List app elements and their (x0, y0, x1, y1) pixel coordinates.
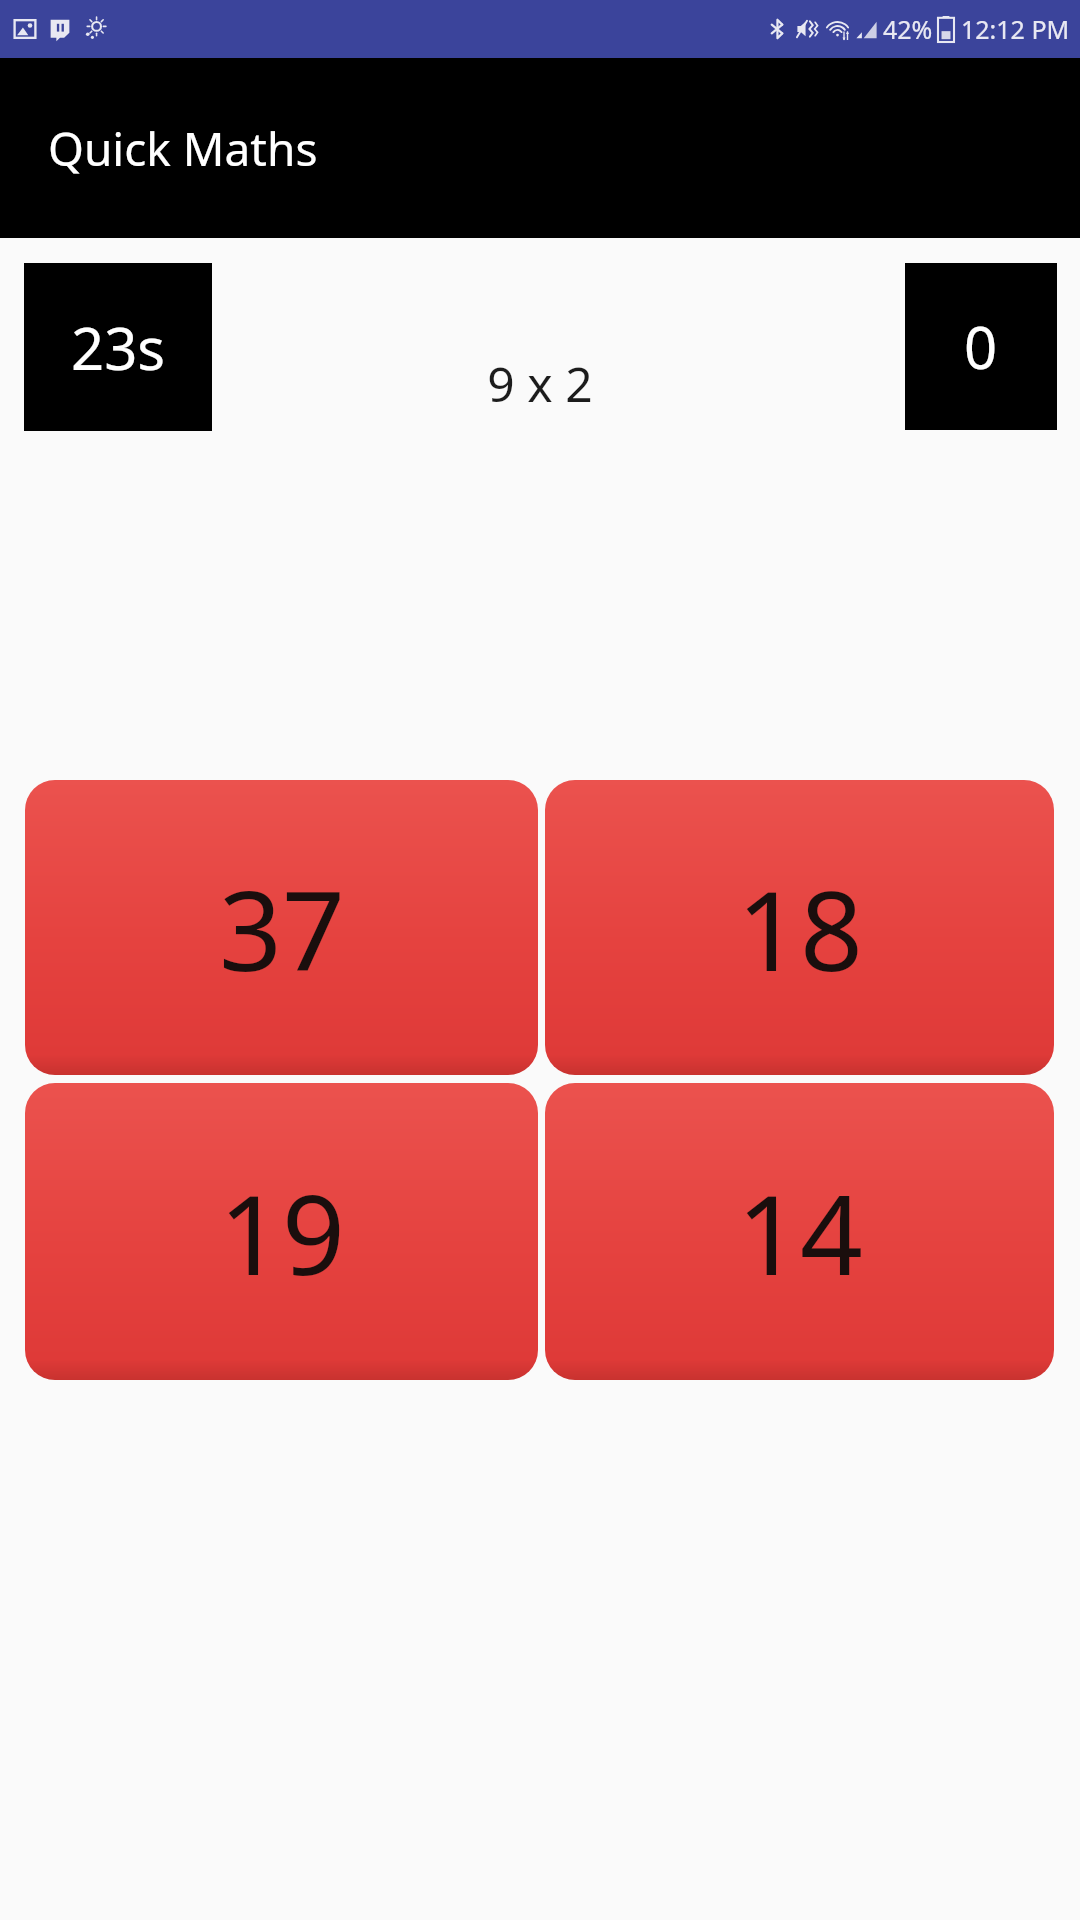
staticText: 12:12 PM (961, 12, 1070, 46)
staticText: 18 (737, 853, 863, 1003)
button[interactable]: 18 (545, 780, 1054, 1075)
button[interactable]: 19 (25, 1083, 538, 1380)
button[interactable]: 0 (905, 263, 1057, 430)
button[interactable]: 14 (545, 1083, 1054, 1380)
staticText: 14 (737, 1157, 863, 1307)
staticText: 37 (219, 853, 345, 1003)
staticText: 19 (219, 1157, 345, 1307)
button[interactable]: 23s (24, 263, 212, 431)
staticText: Quick Maths (48, 117, 318, 180)
staticText: 0 (964, 307, 998, 386)
staticText: 9 x 2 (487, 351, 593, 416)
staticText: 42% (883, 12, 933, 46)
staticText: 23s (71, 308, 166, 387)
button[interactable]: 37 (25, 780, 538, 1075)
